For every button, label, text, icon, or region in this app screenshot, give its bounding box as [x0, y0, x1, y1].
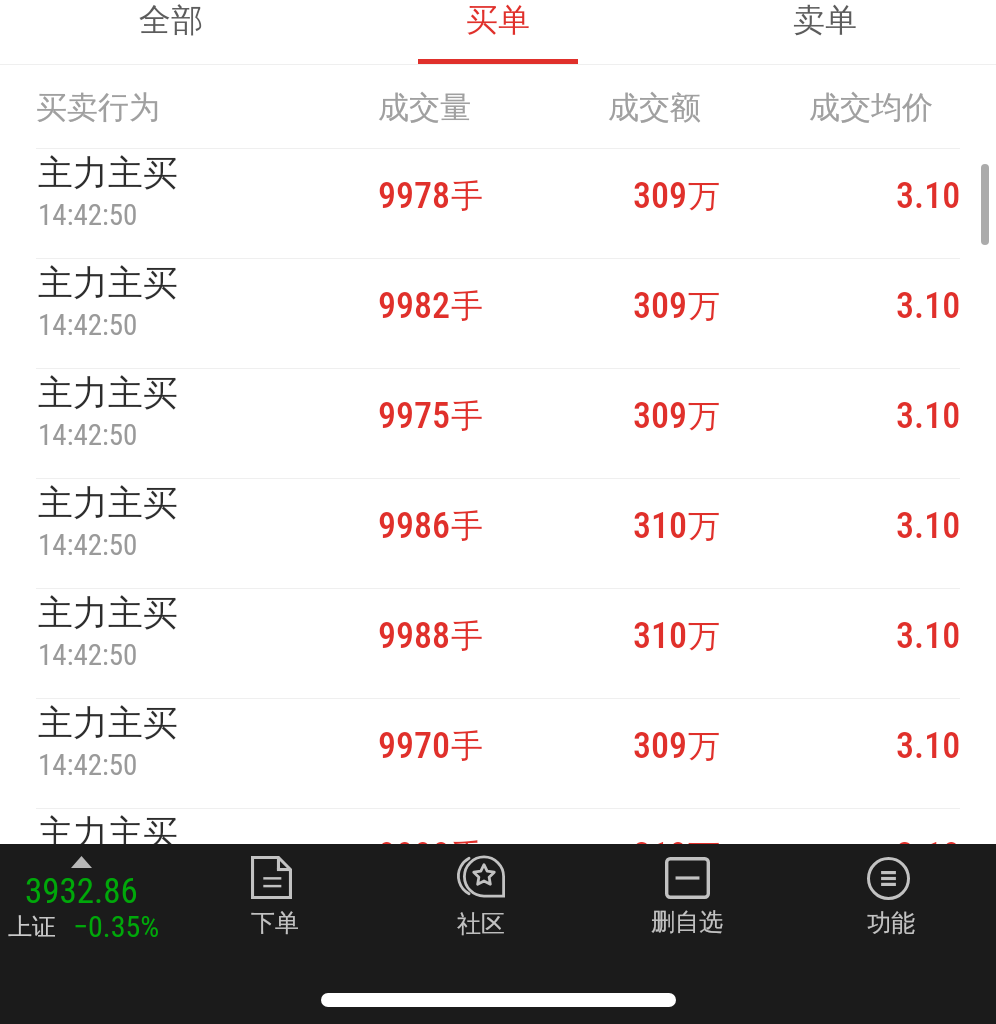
button[interactable]: 主力主买 [0, 809, 996, 918]
staticText: 万 [688, 506, 720, 546]
staticText: 9982 [378, 285, 451, 327]
staticText: 成交额 [608, 88, 701, 127]
button[interactable]: 主力主买 [0, 589, 996, 698]
button[interactable]: 功能 [789, 844, 996, 972]
staticText: 手 [451, 836, 483, 876]
button[interactable]: 全部 [8, 0, 334, 64]
button[interactable]: 买单 [334, 0, 661, 64]
staticText: 手 [451, 726, 483, 766]
staticText: 手 [451, 286, 483, 326]
staticText: 9986 [378, 505, 451, 547]
staticText: 主力主买 [38, 481, 178, 525]
staticText: 3.10 [896, 285, 961, 327]
staticText: 万 [688, 616, 720, 656]
staticText: 成交均价 [809, 88, 933, 127]
staticText: 功能 [867, 908, 915, 938]
staticText: 万 [688, 396, 720, 436]
staticText: 3932.86 [25, 871, 138, 912]
staticText: 9988 [378, 615, 451, 657]
button[interactable]: 主力主买 [0, 149, 996, 258]
staticText: 买单 [466, 0, 530, 40]
staticText: 主力主买 [38, 261, 178, 305]
staticText: 9970 [378, 725, 451, 767]
staticText: 手 [451, 506, 483, 546]
button[interactable]: 3932.86 [0, 844, 170, 972]
staticText: 14:42:50 [38, 638, 138, 672]
staticText: −0.35% [73, 909, 160, 944]
staticText: 下单 [251, 908, 299, 938]
staticText: 主力主买 [38, 811, 178, 855]
staticText: 删自选 [651, 907, 723, 937]
staticText: 3.10 [896, 725, 961, 767]
staticText: 14:42:50 [38, 528, 138, 562]
staticText: 3.10 [896, 395, 961, 437]
other: 功能 [867, 857, 910, 900]
other: 社区 [456, 854, 504, 898]
staticText: 309 [633, 175, 688, 217]
button[interactable]: 主力主买 [0, 259, 996, 368]
staticText: 手 [451, 396, 483, 436]
staticText: 14:42:50 [38, 198, 138, 232]
staticText: 主力主买 [38, 371, 178, 415]
staticText: 3.10 [896, 615, 961, 657]
staticText: 310 [633, 835, 688, 877]
staticText: 手 [451, 176, 483, 216]
staticText: 3.10 [896, 505, 961, 547]
staticText: 309 [633, 285, 688, 327]
button[interactable]: 社区 [376, 844, 582, 972]
staticText: 上证 [8, 912, 56, 942]
staticText: 309 [633, 725, 688, 767]
staticText: 9975 [378, 395, 451, 437]
staticText: 3.10 [896, 175, 961, 217]
staticText: 9990 [378, 835, 451, 877]
button[interactable]: 主力主买 [0, 479, 996, 588]
staticText: 主力主买 [38, 151, 178, 195]
staticText: 万 [688, 726, 720, 766]
button[interactable]: 主力主买 [0, 369, 996, 478]
button[interactable]: 下单 [170, 844, 376, 972]
staticText: 手 [451, 616, 483, 656]
other: 下单 [251, 856, 292, 899]
other: 删自选 [665, 857, 710, 899]
staticText: 成交量 [378, 88, 471, 127]
button[interactable]: 卖单 [661, 0, 988, 64]
staticText: 主力主买 [38, 591, 178, 635]
staticText: 310 [633, 505, 688, 547]
button[interactable]: 删自选 [582, 844, 789, 972]
staticText: 买卖行为 [36, 88, 160, 127]
staticText: 全部 [139, 0, 203, 40]
staticText: 14:42:50 [38, 858, 138, 892]
staticText: 万 [688, 286, 720, 326]
staticText: 14:42:50 [38, 748, 138, 782]
staticText: 社区 [457, 909, 505, 939]
staticText: 万 [688, 836, 720, 876]
staticText: 14:42:50 [38, 418, 138, 452]
staticText: 310 [633, 615, 688, 657]
staticText: 3.10 [896, 835, 961, 877]
staticText: 主力主买 [38, 701, 178, 745]
staticText: 万 [688, 176, 720, 216]
staticText: 309 [633, 395, 688, 437]
staticText: 14:42:50 [38, 308, 138, 342]
button[interactable]: 主力主买 [0, 699, 996, 808]
staticText: 9978 [378, 175, 451, 217]
staticText: 卖单 [793, 0, 857, 40]
